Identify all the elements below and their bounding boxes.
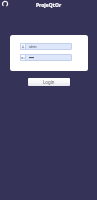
staticText: Login bbox=[43, 79, 55, 85]
button[interactable] bbox=[20, 54, 72, 61]
other: ProjeQtOr logo bbox=[1, 0, 11, 10]
staticText: admin bbox=[29, 45, 37, 49]
staticText: ProjeQtOr bbox=[36, 2, 62, 9]
button[interactable]: admin bbox=[20, 43, 72, 50]
button[interactable]: Login bbox=[28, 78, 70, 86]
